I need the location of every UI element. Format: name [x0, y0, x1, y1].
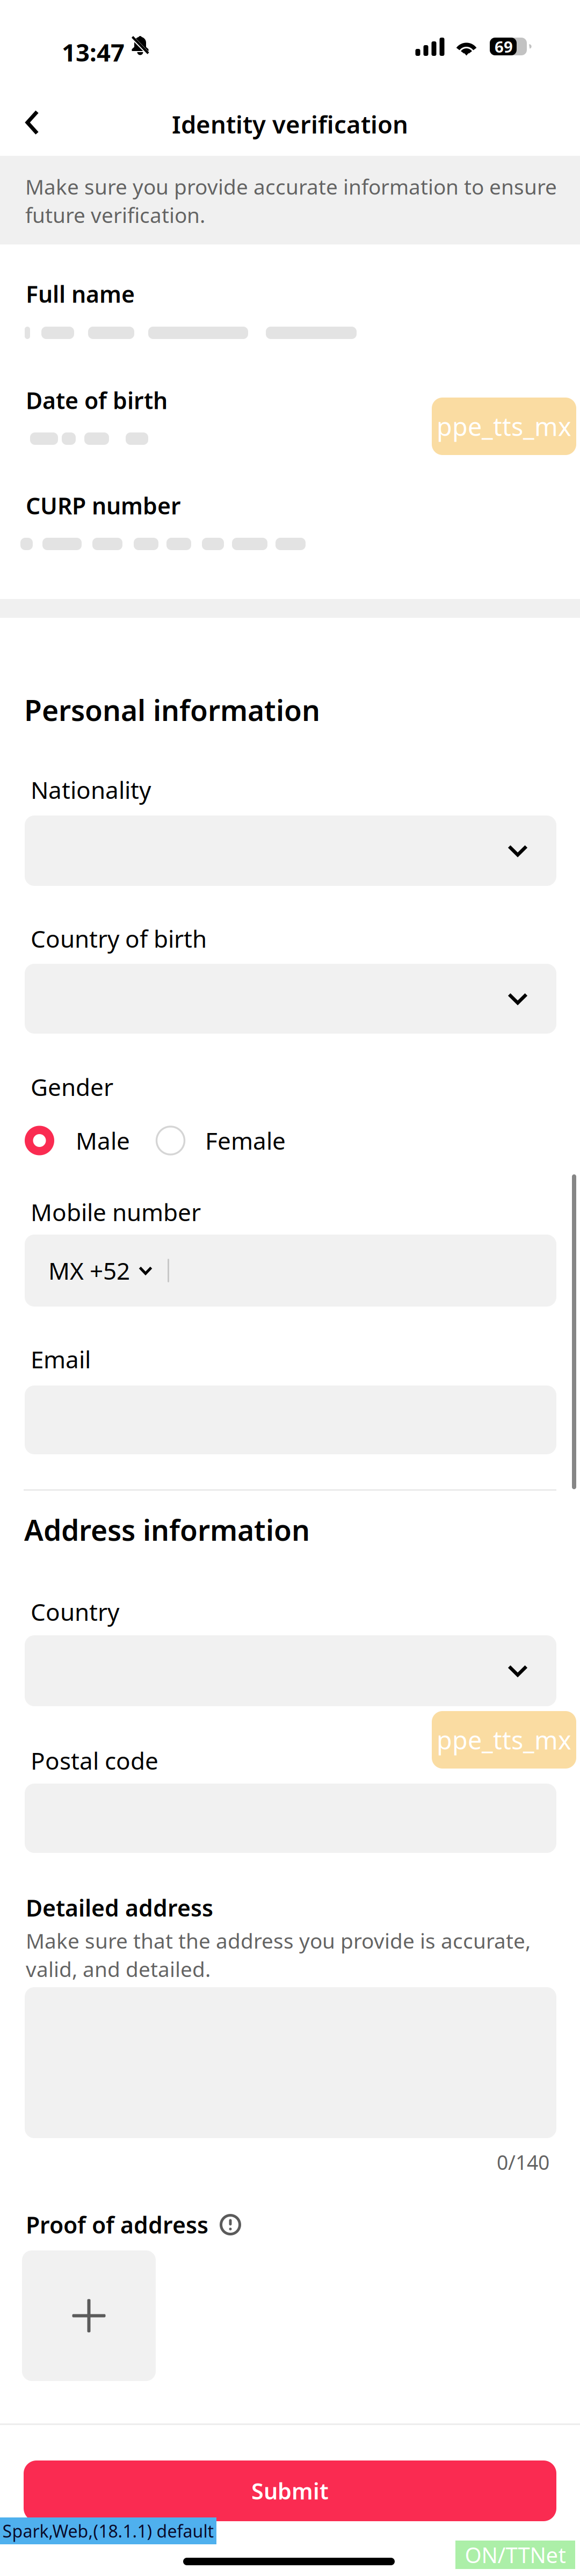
button[interactable]: [25, 964, 556, 1034]
staticText: ppe_tts_mx: [437, 409, 571, 443]
staticText: CURP number: [26, 490, 181, 521]
staticText: Spark,Web,(18.1.1) default: [2, 2519, 214, 2543]
button[interactable]: MX +52: [25, 1235, 556, 1307]
button[interactable]: Submit: [24, 2460, 556, 2521]
button[interactable]: Upload proof of address: [22, 2250, 156, 2381]
button[interactable]: Back: [0, 102, 59, 143]
staticText: Identity verification: [172, 107, 408, 141]
staticText: ON/TTNet: [465, 2540, 566, 2569]
staticText: Country: [31, 1596, 119, 1628]
staticText: 0/140: [497, 2148, 549, 2176]
staticText: MX +52: [48, 1254, 130, 1287]
staticText: Nationality: [31, 774, 151, 806]
staticText: ppe_tts_mx: [437, 1723, 571, 1757]
staticText: Proof of address: [26, 2209, 208, 2240]
staticText: Country of birth: [31, 922, 207, 955]
staticText: Address information: [24, 1510, 310, 1549]
button[interactable]: Female: [156, 1125, 286, 1156]
button[interactable]: [25, 1635, 556, 1706]
staticText: Full name: [26, 278, 135, 309]
staticText: Female: [205, 1124, 286, 1157]
staticText: Personal information: [24, 690, 320, 729]
button[interactable]: [25, 816, 556, 886]
staticText: Submit: [251, 2476, 329, 2506]
staticText: Make sure you provide accurate informati…: [25, 172, 557, 229]
staticText: Detailed address: [26, 1892, 213, 1923]
button[interactable]: Male: [25, 1125, 130, 1156]
staticText: 69: [495, 36, 513, 57]
staticText: Postal code: [31, 1744, 158, 1777]
staticText: Make sure that the address you provide i…: [26, 1926, 531, 1983]
staticText: 13:47: [62, 35, 125, 69]
staticText: Male: [76, 1124, 130, 1157]
staticText: Gender: [31, 1071, 113, 1103]
staticText: Mobile number: [31, 1196, 201, 1228]
staticText: Date of birth: [26, 385, 168, 416]
staticText: Email: [31, 1343, 91, 1375]
